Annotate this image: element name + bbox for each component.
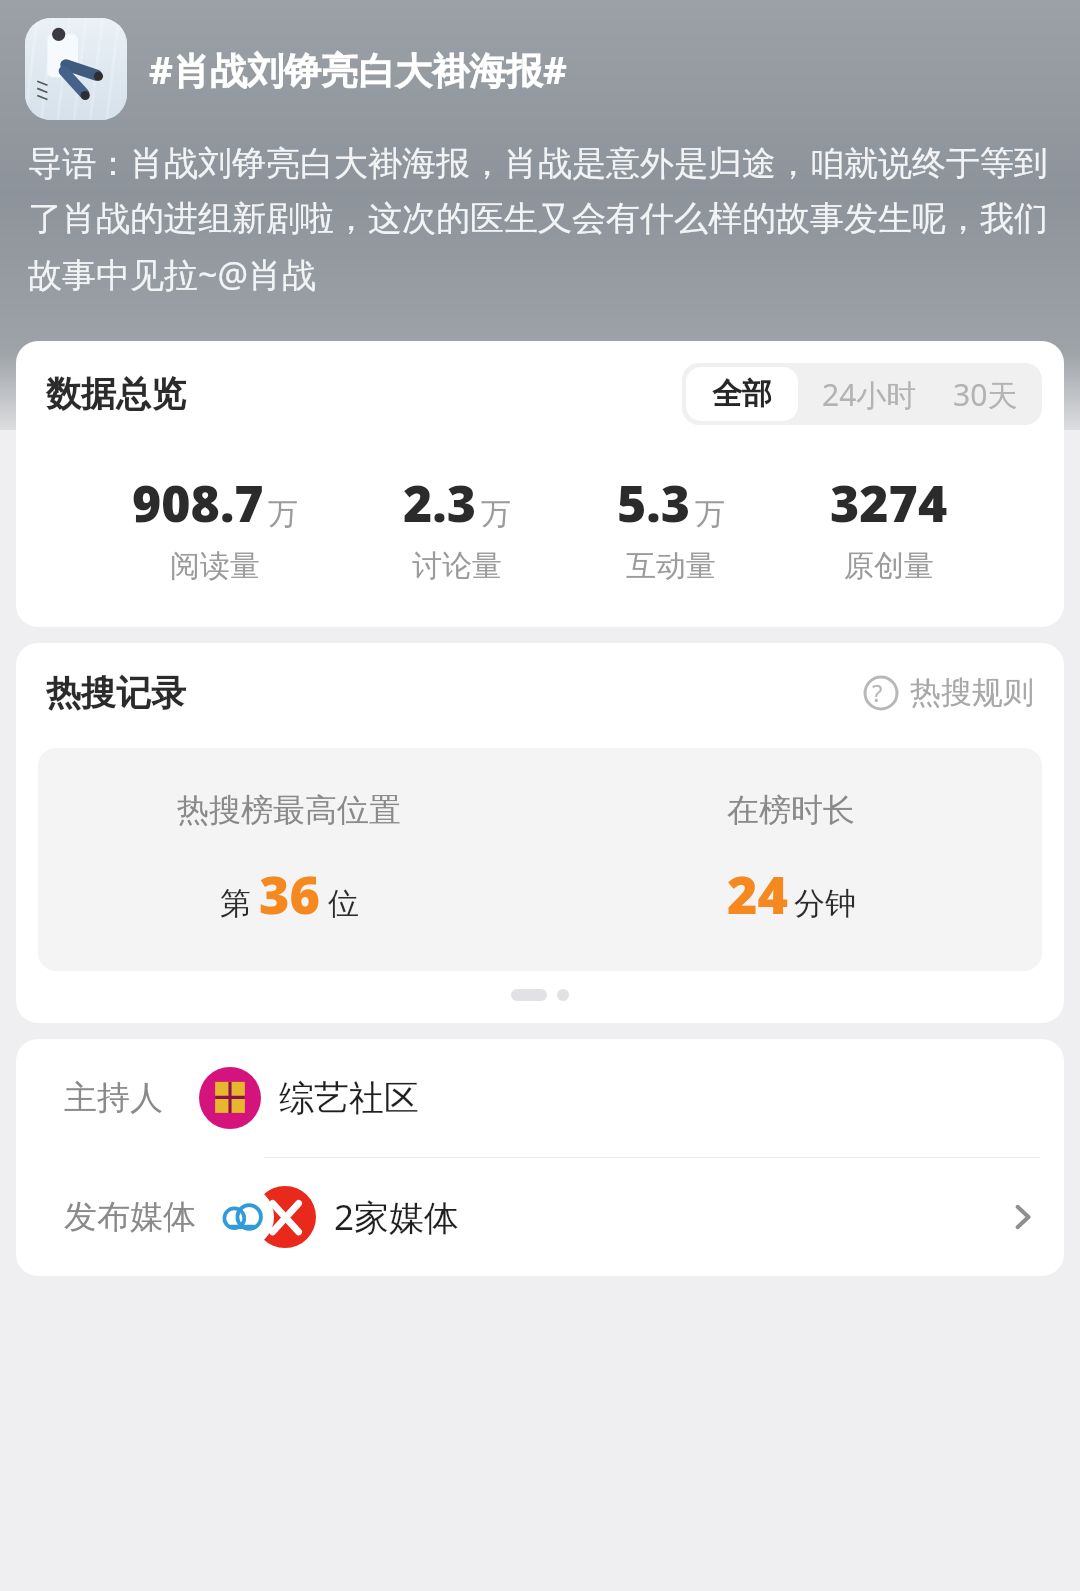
staticText: 讨论量	[412, 547, 502, 585]
button[interactable]: 30天	[937, 363, 1042, 425]
button[interactable]: 全部	[686, 367, 798, 421]
staticText: 3274	[830, 469, 948, 537]
staticText: 2.3	[403, 469, 477, 537]
staticText: 第	[220, 884, 251, 923]
staticText: 30天	[953, 374, 1018, 415]
staticText: 数据总览	[46, 372, 186, 416]
staticText: 热搜记录	[46, 671, 186, 715]
button[interactable]: ?	[859, 669, 1038, 716]
staticText: ?	[872, 676, 883, 709]
staticText: 热搜榜最高位置	[177, 790, 401, 830]
staticText: 2家媒体	[334, 1193, 460, 1241]
staticText: 24	[727, 858, 788, 929]
staticText: 24小时	[822, 374, 917, 415]
staticText: 36	[259, 858, 320, 929]
staticText: 综艺社区	[279, 1076, 419, 1120]
staticText: 位	[328, 884, 359, 923]
staticText: 热搜规则	[910, 673, 1034, 712]
staticText: 发布媒体	[64, 1196, 196, 1238]
staticText: 万	[695, 495, 725, 533]
button[interactable]: 主持人	[16, 1039, 1064, 1157]
staticText: 万	[481, 495, 511, 533]
staticText: 万	[268, 495, 298, 533]
button[interactable]: 话题头像	[25, 18, 127, 120]
button[interactable]: 24小时	[802, 363, 937, 425]
staticText: 主持人	[64, 1077, 163, 1119]
staticText: #肖战刘铮亮白大褂海报#	[149, 44, 567, 95]
staticText: 分钟	[794, 884, 856, 923]
staticText: 全部	[712, 375, 772, 413]
other: 查看更多媒体	[1006, 1200, 1040, 1234]
staticText: 5.3	[617, 469, 691, 537]
staticText: 导语：肖战刘铮亮白大褂海报，肖战是意外是归途，咱就说终于等到了肖战的进组新剧啦，…	[28, 142, 1052, 297]
staticText: 阅读量	[170, 547, 260, 585]
staticText: 互动量	[626, 547, 716, 585]
staticText: 在榜时长	[727, 790, 855, 830]
staticText: 原创量	[844, 547, 934, 585]
staticText: 908.7	[132, 469, 264, 537]
button[interactable]: 发布媒体	[16, 1158, 1064, 1276]
